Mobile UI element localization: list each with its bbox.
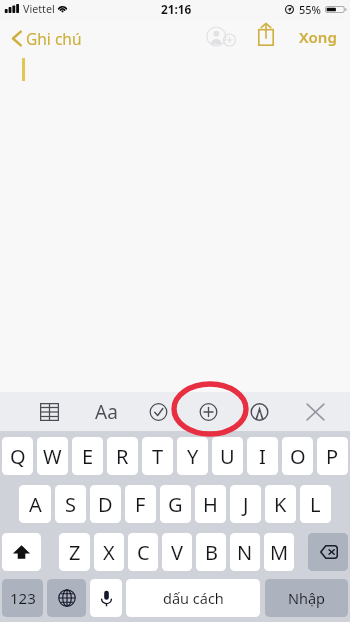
staticText: R — [116, 443, 129, 470]
button[interactable]: V — [162, 533, 192, 571]
staticText: P — [326, 443, 339, 470]
button[interactable]: Y — [177, 437, 208, 475]
staticText: M — [270, 539, 289, 566]
staticText: C — [137, 539, 150, 566]
staticText: J — [243, 491, 249, 518]
button[interactable]: Backspace — [308, 533, 348, 571]
button[interactable]: B — [196, 533, 226, 571]
button[interactable]: O — [282, 437, 313, 475]
staticText: Ghi chú — [26, 28, 82, 49]
button[interactable]: X — [94, 533, 124, 571]
staticText: E — [82, 443, 94, 470]
staticText: I — [259, 443, 266, 470]
button[interactable]: U — [212, 437, 243, 475]
staticText: G — [168, 491, 183, 518]
button[interactable]: H — [195, 485, 226, 523]
button[interactable]: Insert table — [29, 392, 69, 431]
staticText: U — [220, 443, 235, 470]
button[interactable]: W — [37, 437, 68, 475]
button[interactable]: Shift — [2, 533, 41, 571]
button[interactable]: T — [142, 437, 173, 475]
staticText: S — [65, 491, 76, 518]
button[interactable]: Text formatting — [86, 392, 126, 431]
button[interactable]: Hide keyboard — [295, 392, 335, 431]
staticText: K — [274, 491, 287, 518]
button[interactable]: M — [264, 533, 294, 571]
button[interactable]: P — [317, 437, 348, 475]
staticText: A — [29, 491, 42, 518]
button[interactable]: dấu cách — [126, 579, 260, 617]
button[interactable]: Nhập — [265, 579, 348, 617]
staticText: Viettel — [23, 2, 55, 17]
staticText: Nhập — [288, 588, 326, 608]
button[interactable]: Next keyboard — [47, 579, 86, 617]
button[interactable]: Q — [2, 437, 33, 475]
staticText: D — [98, 491, 113, 518]
staticText: V — [171, 539, 183, 566]
button[interactable]: Share — [252, 19, 280, 49]
button[interactable]: 123 — [2, 579, 43, 617]
staticText: L — [310, 491, 321, 518]
staticText: Q — [10, 443, 26, 470]
button[interactable]: F — [125, 485, 156, 523]
button[interactable]: Dictation — [90, 579, 122, 617]
staticText: W — [43, 443, 62, 470]
staticText: 21:16 — [161, 1, 192, 17]
staticText: Xong — [299, 27, 337, 47]
staticText: dấu cách — [163, 588, 224, 608]
button[interactable]: Add attachment — [188, 392, 228, 431]
button[interactable]: J — [230, 485, 261, 523]
button[interactable]: Z — [59, 533, 90, 571]
staticText: N — [237, 539, 253, 566]
button[interactable]: A — [19, 485, 51, 523]
button[interactable]: Xong — [294, 24, 342, 50]
staticText: 55% — [299, 2, 321, 17]
button[interactable]: R — [107, 437, 138, 475]
button[interactable]: G — [160, 485, 191, 523]
staticText: T — [152, 443, 164, 470]
staticText: Z — [69, 539, 81, 566]
button[interactable]: S — [55, 485, 86, 523]
staticText: 123 — [10, 588, 36, 608]
staticText: Aa — [95, 399, 118, 425]
button[interactable]: L — [300, 485, 331, 523]
staticText: F — [135, 491, 146, 518]
button[interactable]: I — [247, 437, 278, 475]
button[interactable]: K — [265, 485, 296, 523]
button[interactable]: C — [128, 533, 158, 571]
staticText: Y — [187, 443, 199, 470]
staticText: O — [290, 443, 306, 470]
button[interactable]: N — [230, 533, 260, 571]
button[interactable]: Checklist — [138, 392, 178, 431]
button[interactable]: D — [90, 485, 121, 523]
button[interactable]: Markup — [239, 392, 279, 431]
button[interactable]: Ghi chú — [7, 25, 88, 51]
staticText: H — [203, 491, 218, 518]
button[interactable]: Add people — [202, 22, 240, 50]
button[interactable]: E — [72, 437, 103, 475]
staticText: X — [103, 539, 115, 566]
staticText: B — [205, 539, 218, 566]
